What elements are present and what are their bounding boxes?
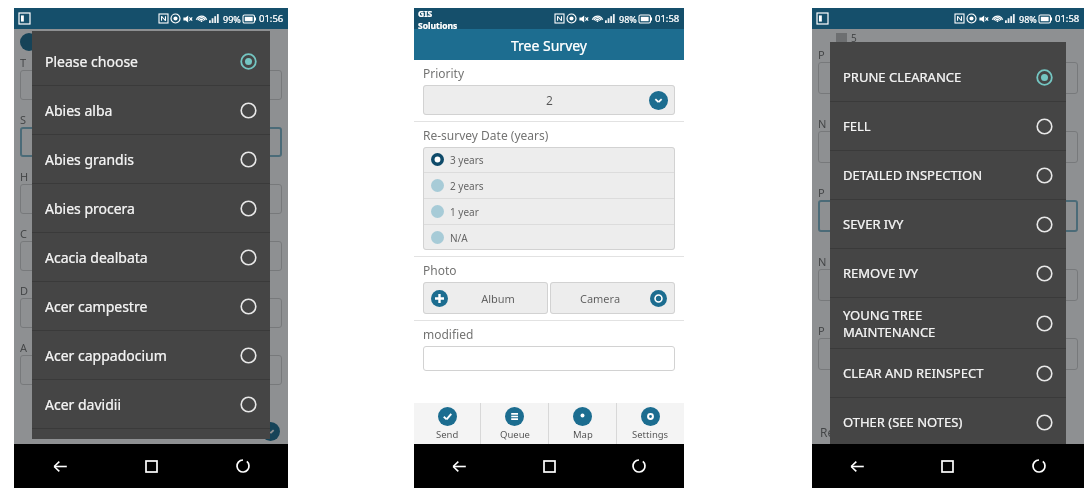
button[interactable]: Map xyxy=(549,403,616,444)
button[interactable]: Abies grandis xyxy=(32,135,270,183)
staticText: Acer davidii xyxy=(45,395,240,414)
staticText: Camera xyxy=(550,291,650,306)
staticText: 98% xyxy=(1019,13,1037,25)
staticText: 01:58 xyxy=(1055,12,1080,25)
button[interactable]: Please choose xyxy=(32,37,270,85)
staticText: N/A xyxy=(450,231,468,245)
staticText: N xyxy=(818,254,827,269)
button[interactable]: Acer cappadocium xyxy=(32,331,270,379)
button[interactable]: Recents xyxy=(993,444,1084,488)
staticText: Re-survey Date (years) xyxy=(820,424,946,440)
staticText: Send xyxy=(436,428,459,441)
button[interactable]: DETAILED INSPECTION xyxy=(830,151,1066,199)
staticText: 01:58 xyxy=(655,12,680,25)
staticText: 98% xyxy=(619,13,637,25)
button[interactable]: Acer davidii xyxy=(32,380,270,428)
staticText: Please choose xyxy=(22,423,261,439)
staticText: H xyxy=(20,169,29,184)
staticText: DETAILED INSPECTION xyxy=(843,166,1036,184)
staticText: 01:56 xyxy=(259,12,284,25)
staticText: OTHER (SEE NOTES) xyxy=(843,413,1036,431)
button[interactable]: Album xyxy=(423,282,548,314)
button[interactable]: Home xyxy=(902,444,993,488)
staticText: D xyxy=(20,283,29,298)
staticText: 3 years xyxy=(450,153,484,167)
staticText: Solutions xyxy=(418,20,458,29)
staticText: C xyxy=(20,226,27,241)
staticText: Abies procera xyxy=(45,199,240,218)
staticText: Re-survey Date (years) xyxy=(423,127,549,143)
button[interactable]: Home xyxy=(106,444,197,488)
staticText: P xyxy=(818,323,825,338)
staticText: Photo xyxy=(423,262,457,278)
staticText: 2 years xyxy=(450,179,484,193)
staticText: 1 year xyxy=(450,205,479,219)
button[interactable]: Recents xyxy=(197,444,288,488)
staticText: Acer campestre xyxy=(45,297,240,316)
staticText: Map xyxy=(573,428,593,441)
staticText: modified xyxy=(423,326,474,342)
staticText: Acacia dealbata xyxy=(45,248,240,267)
staticText: YOUNG TREE MAINTENANCE xyxy=(843,306,1036,341)
button[interactable] xyxy=(423,346,675,371)
button[interactable]: 2 xyxy=(423,85,675,115)
staticText: Abies grandis xyxy=(45,150,240,169)
button[interactable]: Back xyxy=(414,444,504,488)
button[interactable]: Back xyxy=(812,444,902,488)
button[interactable]: Abies alba xyxy=(32,86,270,134)
staticText: PRUNE CLEARANCE xyxy=(843,68,1036,86)
staticText: Queue xyxy=(500,428,530,441)
staticText: A xyxy=(20,340,28,355)
staticText: Please choose xyxy=(45,52,240,71)
staticText: CLEAR AND REINSPECT xyxy=(843,364,1036,382)
staticText: 2 xyxy=(546,92,553,108)
button[interactable]: Acacia dealbata xyxy=(32,233,270,281)
button[interactable]: PRUNE CLEARANCE xyxy=(830,53,1066,101)
button[interactable]: Acer campestre xyxy=(32,282,270,330)
staticText: GIS xyxy=(418,8,433,20)
staticText: P xyxy=(818,47,825,62)
staticText: S xyxy=(20,112,27,127)
button[interactable]: SEVER IVY xyxy=(830,200,1066,248)
button[interactable]: Abies procera xyxy=(32,184,270,232)
staticText: Settings xyxy=(632,428,669,441)
button[interactable]: Recents xyxy=(594,444,684,488)
button[interactable]: Queue xyxy=(481,403,548,444)
staticText: SEVER IVY xyxy=(843,215,1036,233)
staticText: 5 xyxy=(851,31,857,45)
staticText: FELL xyxy=(843,117,1036,135)
button[interactable]: REMOVE IVY xyxy=(830,249,1066,297)
button[interactable]: 1 year xyxy=(423,199,675,224)
button[interactable]: Settings xyxy=(617,403,684,444)
button[interactable]: N/A xyxy=(423,225,675,250)
button[interactable]: OTHER (SEE NOTES) xyxy=(830,398,1066,446)
button[interactable]: Home xyxy=(504,444,594,488)
button[interactable]: FELL xyxy=(830,102,1066,150)
staticText: Album xyxy=(448,291,548,306)
staticText: REMOVE IVY xyxy=(843,264,1036,282)
button[interactable]: 2 years xyxy=(423,173,675,198)
staticText: N xyxy=(818,116,827,131)
staticText: Abies alba xyxy=(45,101,240,120)
staticText: T xyxy=(20,55,27,70)
staticText: 99% xyxy=(223,13,241,25)
button[interactable]: YOUNG TREE MAINTENANCE xyxy=(830,298,1066,348)
staticText: Tree Survey xyxy=(511,36,588,55)
staticText: Choose time xyxy=(38,34,282,50)
button[interactable]: Send xyxy=(414,403,480,444)
button[interactable]: CLEAR AND REINSPECT xyxy=(830,349,1066,397)
button[interactable]: Back xyxy=(14,444,106,488)
button[interactable]: 3 years xyxy=(423,147,675,172)
staticText: Acer cappadocium xyxy=(45,346,240,365)
staticText: Priority xyxy=(423,65,465,81)
button[interactable]: Camera xyxy=(550,282,675,314)
staticText: P xyxy=(818,185,825,200)
